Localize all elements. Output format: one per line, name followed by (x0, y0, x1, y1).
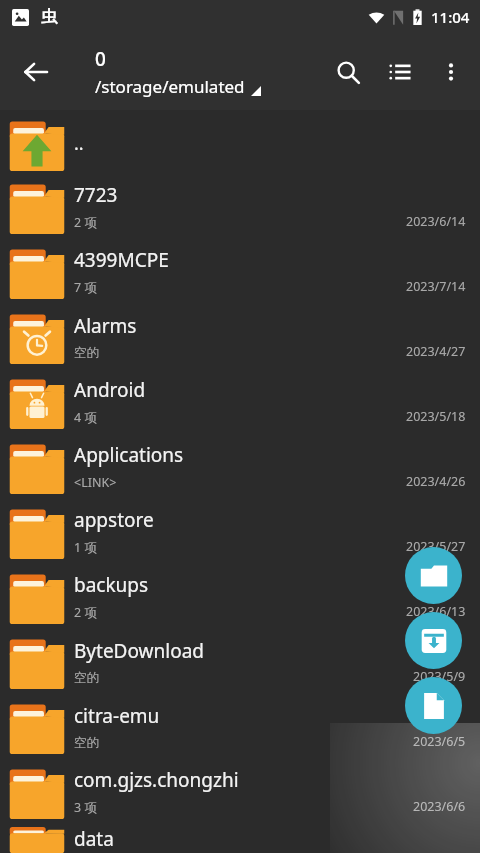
button[interactable]: citra-emu (0, 694, 480, 759)
button[interactable]: backups (0, 564, 480, 629)
staticText: 2023/6/13 (406, 603, 466, 620)
staticText: 2023/5/27 (406, 538, 466, 555)
button[interactable]: com.gjzs.chongzhi (0, 759, 480, 824)
button[interactable]: Applications (0, 434, 480, 499)
button[interactable]: Alarms (0, 304, 480, 369)
staticText: 2 项 (74, 604, 97, 621)
staticText: 11:04 (431, 7, 470, 27)
staticText: 2023/6/5 (413, 733, 466, 750)
staticText: backups (74, 572, 149, 598)
staticText: 4 项 (74, 409, 97, 426)
staticText: 4399MCPE (74, 247, 169, 273)
staticText: citra-emu (74, 703, 160, 729)
staticText: com.gjzs.chongzhi (74, 767, 239, 793)
staticText: 空的 (74, 735, 99, 751)
button[interactable]: Back (8, 44, 64, 100)
staticText: /storage/emulated (95, 75, 245, 98)
staticText: 空的 (74, 670, 99, 686)
staticText: data (74, 826, 114, 852)
staticText: 2023/5/18 (406, 408, 466, 425)
button[interactable]: 4399MCPE (0, 239, 480, 304)
button[interactable]: More options (426, 47, 476, 97)
button[interactable]: 7723 (0, 174, 480, 239)
staticText: 2023/7/14 (406, 278, 466, 295)
staticText: appstore (74, 507, 154, 533)
staticText: Alarms (74, 313, 137, 339)
staticText: 虫 (41, 7, 57, 27)
staticText: 2023/5/9 (413, 668, 466, 685)
staticText: <LINK> (74, 474, 117, 491)
button[interactable]: Android (0, 369, 480, 434)
staticText: Applications (74, 442, 184, 468)
button[interactable]: New folder (405, 547, 462, 604)
staticText: 0 (95, 46, 106, 72)
staticText: 2 项 (74, 214, 97, 231)
staticText: 2023/6/14 (406, 213, 466, 230)
staticText: ByteDownload (74, 638, 205, 664)
staticText: 2023/6/6 (413, 798, 466, 815)
button[interactable]: appstore (0, 499, 480, 564)
staticText: 1 项 (74, 539, 97, 556)
button[interactable]: Extract archive (405, 612, 462, 669)
staticText: 空的 (74, 345, 99, 361)
staticText: .. (74, 131, 84, 156)
button[interactable]: New file (405, 677, 462, 734)
button[interactable]: 0 (95, 46, 261, 98)
button[interactable]: data (0, 824, 480, 853)
button[interactable]: Search (322, 46, 374, 98)
staticText: 2023/4/27 (406, 343, 466, 360)
staticText: 7723 (74, 182, 118, 208)
staticText: 3 项 (74, 799, 97, 816)
button[interactable]: .. (0, 112, 480, 174)
staticText: 7 项 (74, 279, 97, 296)
staticText: 2023/4/26 (406, 473, 466, 490)
button[interactable]: ByteDownload (0, 629, 480, 694)
button[interactable]: View mode (374, 46, 426, 98)
staticText: Android (74, 377, 146, 403)
